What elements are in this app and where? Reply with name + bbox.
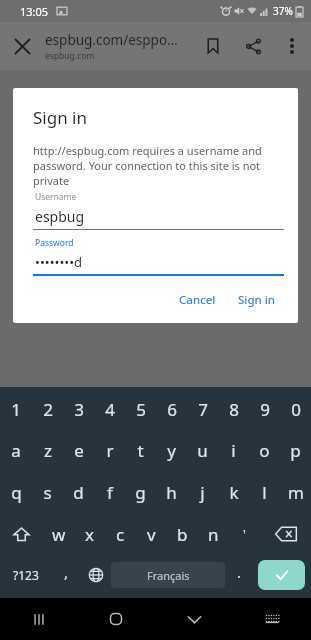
button[interactable]: 7 — [187, 390, 218, 429]
button[interactable]: f — [94, 471, 125, 513]
staticText: Username — [35, 191, 77, 203]
button[interactable]: q — [0, 471, 32, 513]
button[interactable]: l — [249, 471, 280, 513]
button[interactable]: h — [156, 471, 187, 513]
button[interactable]: i — [218, 429, 249, 471]
staticText: ' — [243, 525, 246, 543]
staticText: i — [231, 439, 236, 462]
staticText: espbug.com — [45, 50, 95, 62]
button[interactable]: r — [94, 429, 125, 471]
staticText: o — [259, 439, 270, 462]
button[interactable]: Sign in — [230, 285, 284, 315]
button[interactable]: u — [187, 429, 218, 471]
button[interactable]: z — [32, 429, 63, 471]
button[interactable]: s — [32, 471, 63, 513]
button[interactable]: Enter — [258, 560, 305, 590]
staticText: 7 — [198, 398, 208, 421]
staticText: a — [11, 439, 21, 462]
button[interactable]: c — [105, 513, 136, 555]
button[interactable]: y — [156, 429, 187, 471]
staticText: http://espbug.com requires a username an… — [33, 143, 284, 188]
button[interactable]: Cancel — [171, 285, 224, 315]
button[interactable]: Backspace — [260, 513, 311, 555]
staticText: u — [197, 439, 208, 462]
staticText: 0 — [291, 398, 301, 421]
button[interactable]: n — [198, 513, 229, 555]
button[interactable]: g — [125, 471, 156, 513]
button[interactable]: ••••••••d — [33, 253, 284, 276]
button[interactable]: a — [0, 429, 32, 471]
button[interactable]: Bookmark — [193, 26, 233, 66]
staticText: r — [106, 439, 114, 462]
button[interactable]: p — [280, 429, 311, 471]
button[interactable]: t — [125, 429, 156, 471]
button[interactable]: 0 — [280, 390, 311, 429]
button[interactable]: More options — [273, 27, 311, 65]
staticText: l — [262, 481, 267, 504]
button[interactable]: 8 — [218, 390, 249, 429]
staticText: n — [208, 523, 219, 546]
staticText: p — [290, 439, 301, 462]
staticText: f — [107, 481, 113, 504]
staticText: y — [167, 439, 176, 462]
button[interactable]: ' — [229, 513, 260, 555]
staticText: 6 — [167, 398, 177, 421]
staticText: h — [166, 481, 177, 504]
staticText: . — [237, 562, 242, 582]
button[interactable]: 9 — [249, 390, 280, 429]
button[interactable]: d — [63, 471, 94, 513]
button[interactable]: Close — [0, 24, 44, 68]
staticText: 5 — [136, 398, 146, 421]
button[interactable]: Keyboard layout — [233, 598, 311, 640]
button[interactable]: 3 — [63, 390, 94, 429]
button[interactable]: m — [280, 471, 311, 513]
staticText: g — [135, 481, 146, 504]
button[interactable]: 5 — [125, 390, 156, 429]
button[interactable]: Share — [233, 26, 273, 66]
button[interactable]: 1 — [0, 390, 32, 429]
staticText: b — [177, 523, 188, 546]
staticText: w — [52, 523, 66, 546]
staticText: Sign in — [238, 292, 276, 308]
staticText: Sign in — [33, 106, 87, 129]
button[interactable]: j — [187, 471, 218, 513]
button[interactable]: espbug — [33, 207, 284, 230]
button[interactable]: 6 — [156, 390, 187, 429]
staticText: espbug.com/esppo… — [45, 31, 178, 49]
button[interactable]: w — [43, 513, 74, 555]
button[interactable]: b — [167, 513, 198, 555]
staticText: c — [116, 523, 125, 546]
button[interactable]: Recents — [0, 598, 77, 640]
button[interactable]: , — [52, 555, 80, 595]
button[interactable]: x — [74, 513, 105, 555]
staticText: e — [74, 439, 84, 462]
staticText: t — [137, 439, 144, 462]
staticText: 1 — [11, 398, 21, 421]
button[interactable]: Change language — [80, 555, 111, 595]
staticText: Cancel — [179, 292, 216, 308]
staticText: 13:05 — [20, 4, 49, 19]
staticText: 37% — [273, 4, 293, 18]
button[interactable]: e — [63, 429, 94, 471]
staticText: q — [11, 481, 22, 504]
staticText: j — [200, 481, 205, 504]
button[interactable]: . — [225, 555, 254, 595]
button[interactable]: Shift — [0, 513, 43, 555]
staticText: ?123 — [13, 567, 39, 583]
staticText: , — [64, 562, 69, 582]
staticText: d — [73, 481, 84, 504]
button[interactable]: 4 — [94, 390, 125, 429]
staticText: v — [147, 523, 156, 546]
button[interactable]: k — [218, 471, 249, 513]
button[interactable]: ?123 — [0, 555, 52, 595]
button[interactable]: 2 — [32, 390, 63, 429]
button[interactable]: Français — [111, 562, 225, 588]
button[interactable]: v — [136, 513, 167, 555]
staticText: Password — [35, 237, 74, 249]
button[interactable]: Home — [77, 598, 155, 640]
staticText: 9 — [260, 398, 270, 421]
button[interactable]: o — [249, 429, 280, 471]
button[interactable]: Hide keyboard — [155, 598, 233, 640]
staticText: m — [288, 481, 304, 504]
staticText: z — [44, 439, 52, 462]
